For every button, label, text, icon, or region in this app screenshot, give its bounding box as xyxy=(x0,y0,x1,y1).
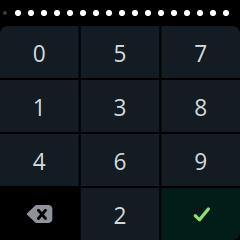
staticText: 1 xyxy=(33,92,46,122)
button[interactable]: 0 xyxy=(0,26,79,78)
button[interactable]: 4 xyxy=(0,134,79,186)
button[interactable]: 3 xyxy=(81,80,159,132)
button[interactable]: 6 xyxy=(81,134,159,186)
staticText: 7 xyxy=(194,38,207,68)
button[interactable]: Delete xyxy=(0,188,79,240)
staticText: 6 xyxy=(113,146,126,176)
staticText: 9 xyxy=(194,146,207,176)
staticText: 2 xyxy=(113,200,126,230)
button[interactable]: 1 xyxy=(0,80,79,132)
staticText: 3 xyxy=(113,92,126,122)
button[interactable]: 9 xyxy=(161,134,240,186)
staticText: 4 xyxy=(33,146,46,176)
staticText: 0 xyxy=(33,38,46,68)
staticText: 8 xyxy=(194,92,207,122)
button[interactable]: 8 xyxy=(161,80,240,132)
button[interactable]: 5 xyxy=(81,26,159,78)
button[interactable]: 2 xyxy=(81,188,159,240)
staticText: 5 xyxy=(113,38,126,68)
button[interactable]: Confirm xyxy=(161,188,240,240)
button[interactable]: 7 xyxy=(161,26,240,78)
